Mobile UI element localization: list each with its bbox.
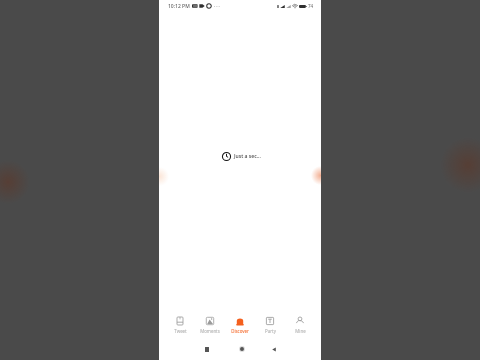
staticText: Mine xyxy=(295,328,306,334)
staticText: Party xyxy=(265,328,276,334)
button[interactable]: Mine xyxy=(287,312,313,338)
staticText: Tweet xyxy=(174,328,187,334)
staticText: 10:12 PM xyxy=(168,3,190,10)
button[interactable]: Party xyxy=(257,312,283,338)
staticText: Just a sec... xyxy=(234,153,261,160)
staticText: Discover xyxy=(231,328,249,334)
button[interactable]: Discover xyxy=(227,312,253,338)
staticText: • • • xyxy=(214,4,220,9)
button[interactable]: Moments xyxy=(197,312,223,338)
staticText: Moments xyxy=(200,328,220,334)
button[interactable]: Tweet xyxy=(167,312,193,338)
button[interactable]: Recent apps xyxy=(195,340,219,358)
button[interactable]: Home xyxy=(230,340,254,358)
button[interactable]: Back xyxy=(262,340,286,358)
staticText: 74 xyxy=(308,3,314,9)
